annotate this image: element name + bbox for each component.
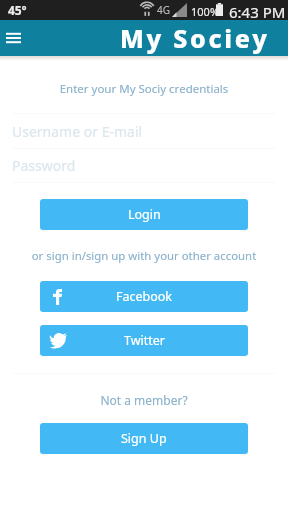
staticText: 45º — [8, 2, 27, 18]
staticText: Enter your My Sociy credentials — [0, 81, 288, 97]
staticText: Password — [12, 156, 76, 175]
staticText: My Sociey — [120, 21, 270, 55]
button[interactable]: Password — [0, 149, 288, 182]
staticText: 100% — [191, 4, 220, 19]
staticText: Username or E-mail — [12, 122, 143, 141]
staticText: 6:43 PM — [229, 2, 286, 22]
button[interactable]: Sign Up — [40, 423, 248, 454]
button[interactable]: Login — [40, 199, 248, 230]
staticText: Not a member? — [0, 392, 288, 408]
staticText: Facebook — [116, 288, 173, 305]
staticText: or sign in/sign up with your other accou… — [0, 248, 288, 264]
button[interactable]: Menu — [6, 27, 21, 49]
button[interactable]: Username or E-mail — [0, 114, 288, 148]
button[interactable]: Twitter — [40, 325, 248, 356]
staticText: Sign Up — [121, 430, 167, 447]
staticText: Twitter — [124, 332, 165, 349]
staticText: Login — [128, 206, 161, 223]
button[interactable]: Facebook — [40, 281, 248, 312]
staticText: 4G — [157, 3, 170, 17]
